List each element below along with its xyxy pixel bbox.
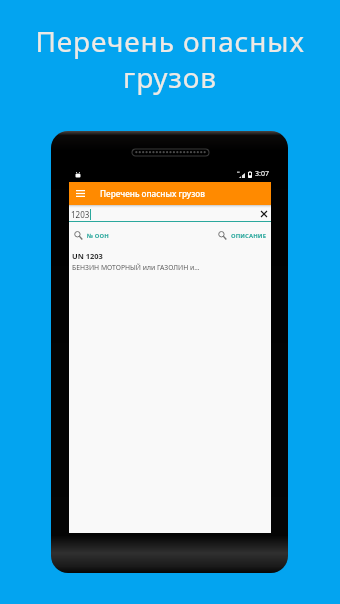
staticText: 3:07 [255, 169, 269, 179]
staticText: БЕНЗИН МОТОРНЫЙ или ГАЗОЛИН и... [72, 263, 200, 272]
staticText: Перечень опасных грузов [100, 188, 205, 199]
button[interactable]: ОПИСАНИЕ [170, 222, 271, 249]
staticText: № ООН [87, 232, 109, 240]
staticText: 1203 [71, 209, 90, 220]
button[interactable]: Clear search [259, 209, 269, 219]
staticText: UN 1203 [72, 251, 103, 261]
button[interactable]: № ООН [69, 222, 170, 249]
button[interactable]: UN 1203 [69, 249, 271, 272]
button[interactable]: Open navigation menu [69, 182, 92, 205]
staticText: ОПИСАНИЕ [231, 232, 267, 240]
staticText: Перечень опасных грузов [0, 22, 340, 96]
